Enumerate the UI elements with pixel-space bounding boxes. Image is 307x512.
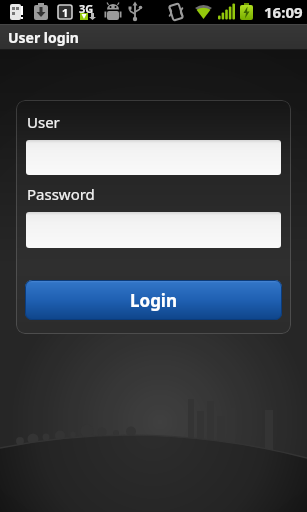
- staticText: 3G: [79, 1, 94, 16]
- staticText: Password: [27, 184, 95, 204]
- staticText: Login: [130, 289, 178, 312]
- button[interactable]: [26, 140, 281, 175]
- button[interactable]: Login: [25, 280, 282, 320]
- staticText: User login: [8, 28, 79, 47]
- staticText: User: [27, 112, 60, 132]
- staticText: 1: [62, 5, 69, 20]
- staticText: 16:09: [264, 2, 303, 22]
- button[interactable]: [26, 212, 281, 248]
